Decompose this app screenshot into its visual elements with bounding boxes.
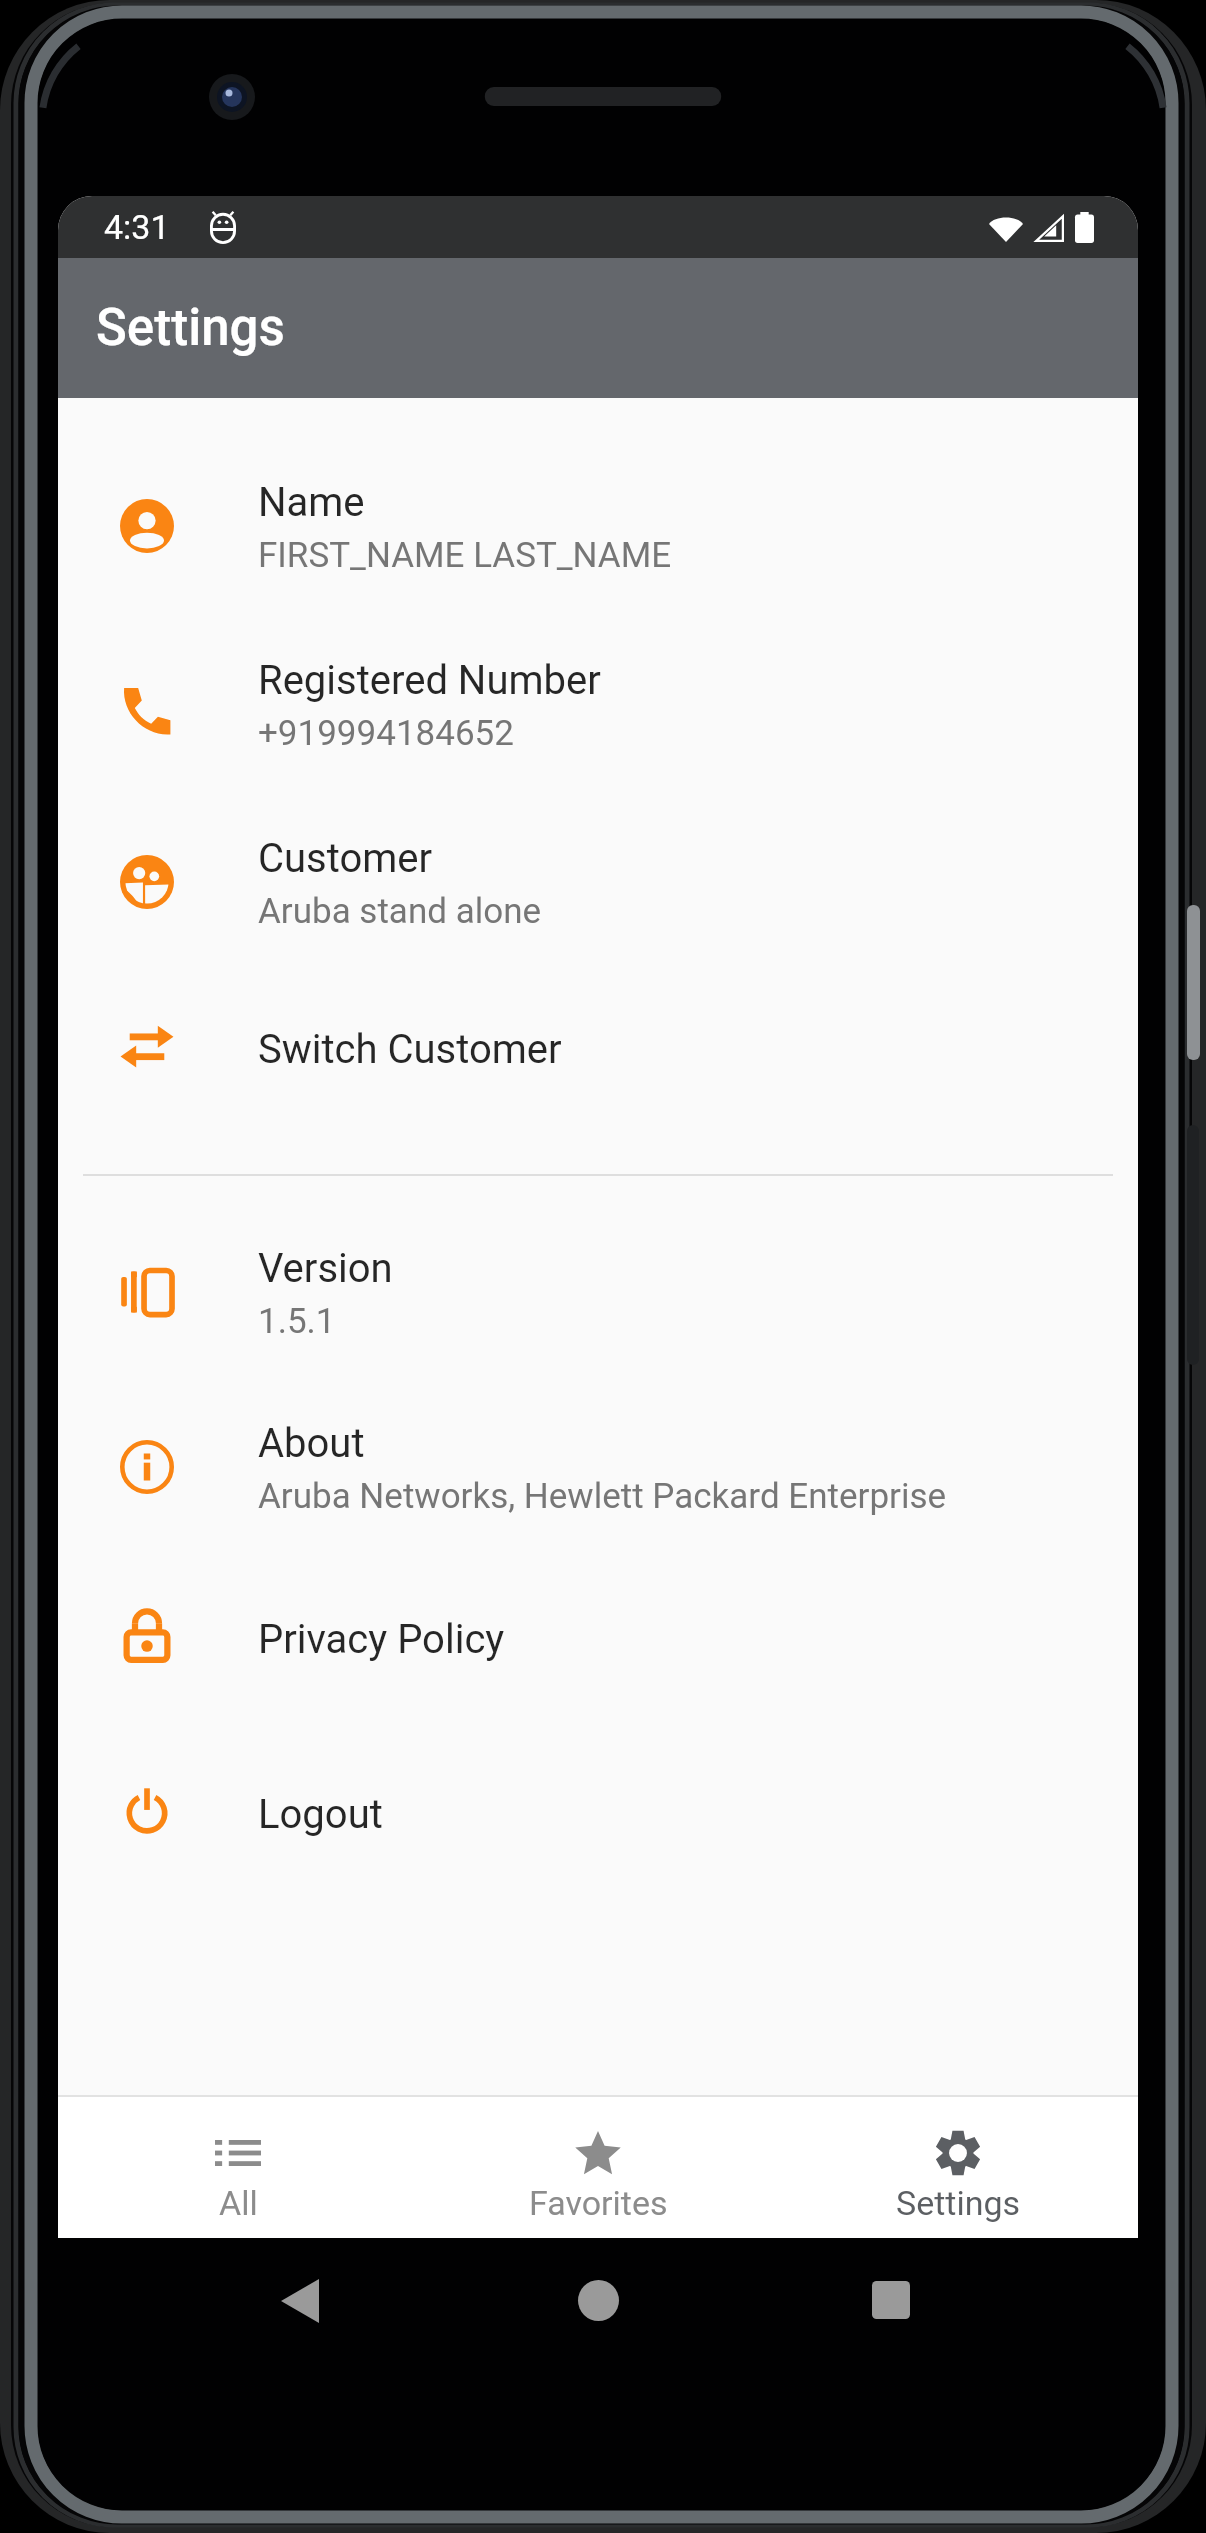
button[interactable]: Settings	[778, 2097, 1138, 2238]
staticText: +919994184652	[258, 713, 514, 754]
staticText: Switch Customer	[258, 1026, 562, 1073]
staticText: FIRST_NAME LAST_NAME	[258, 535, 672, 576]
button[interactable]: Registered Number	[58, 643, 1138, 773]
button[interactable]: Favorites	[418, 2097, 778, 2238]
button[interactable]: All	[58, 2097, 418, 2238]
staticText: Name	[258, 479, 365, 526]
staticText: Version	[258, 1245, 393, 1292]
staticText: Favorites	[529, 2183, 668, 2223]
button[interactable]: Customer	[58, 821, 1138, 951]
button[interactable]: Back	[205, 2240, 395, 2360]
staticText: Settings	[896, 2183, 1021, 2223]
button[interactable]: Logout	[58, 1777, 1138, 1867]
button[interactable]: Version	[58, 1231, 1138, 1361]
staticText: Registered Number	[258, 657, 601, 704]
staticText: Settings	[96, 298, 285, 358]
button[interactable]: Recent apps	[796, 2240, 986, 2360]
button[interactable]: Privacy Policy	[58, 1602, 1138, 1692]
staticText: 4:31	[104, 207, 170, 247]
button[interactable]: Switch Customer	[58, 1012, 1138, 1102]
button[interactable]: About	[58, 1406, 1138, 1536]
staticText: 1.5.1	[258, 1301, 336, 1342]
staticText: Privacy Policy	[258, 1616, 505, 1663]
staticText: About	[258, 1420, 365, 1467]
staticText: Customer	[258, 835, 433, 882]
button[interactable]: Home	[503, 2240, 693, 2360]
staticText: Logout	[258, 1791, 383, 1838]
staticText: Aruba Networks, Hewlett Packard Enterpri…	[258, 1476, 947, 1517]
staticText: All	[219, 2183, 258, 2223]
button[interactable]: Name	[58, 465, 1138, 595]
staticText: Aruba stand alone	[258, 891, 542, 932]
